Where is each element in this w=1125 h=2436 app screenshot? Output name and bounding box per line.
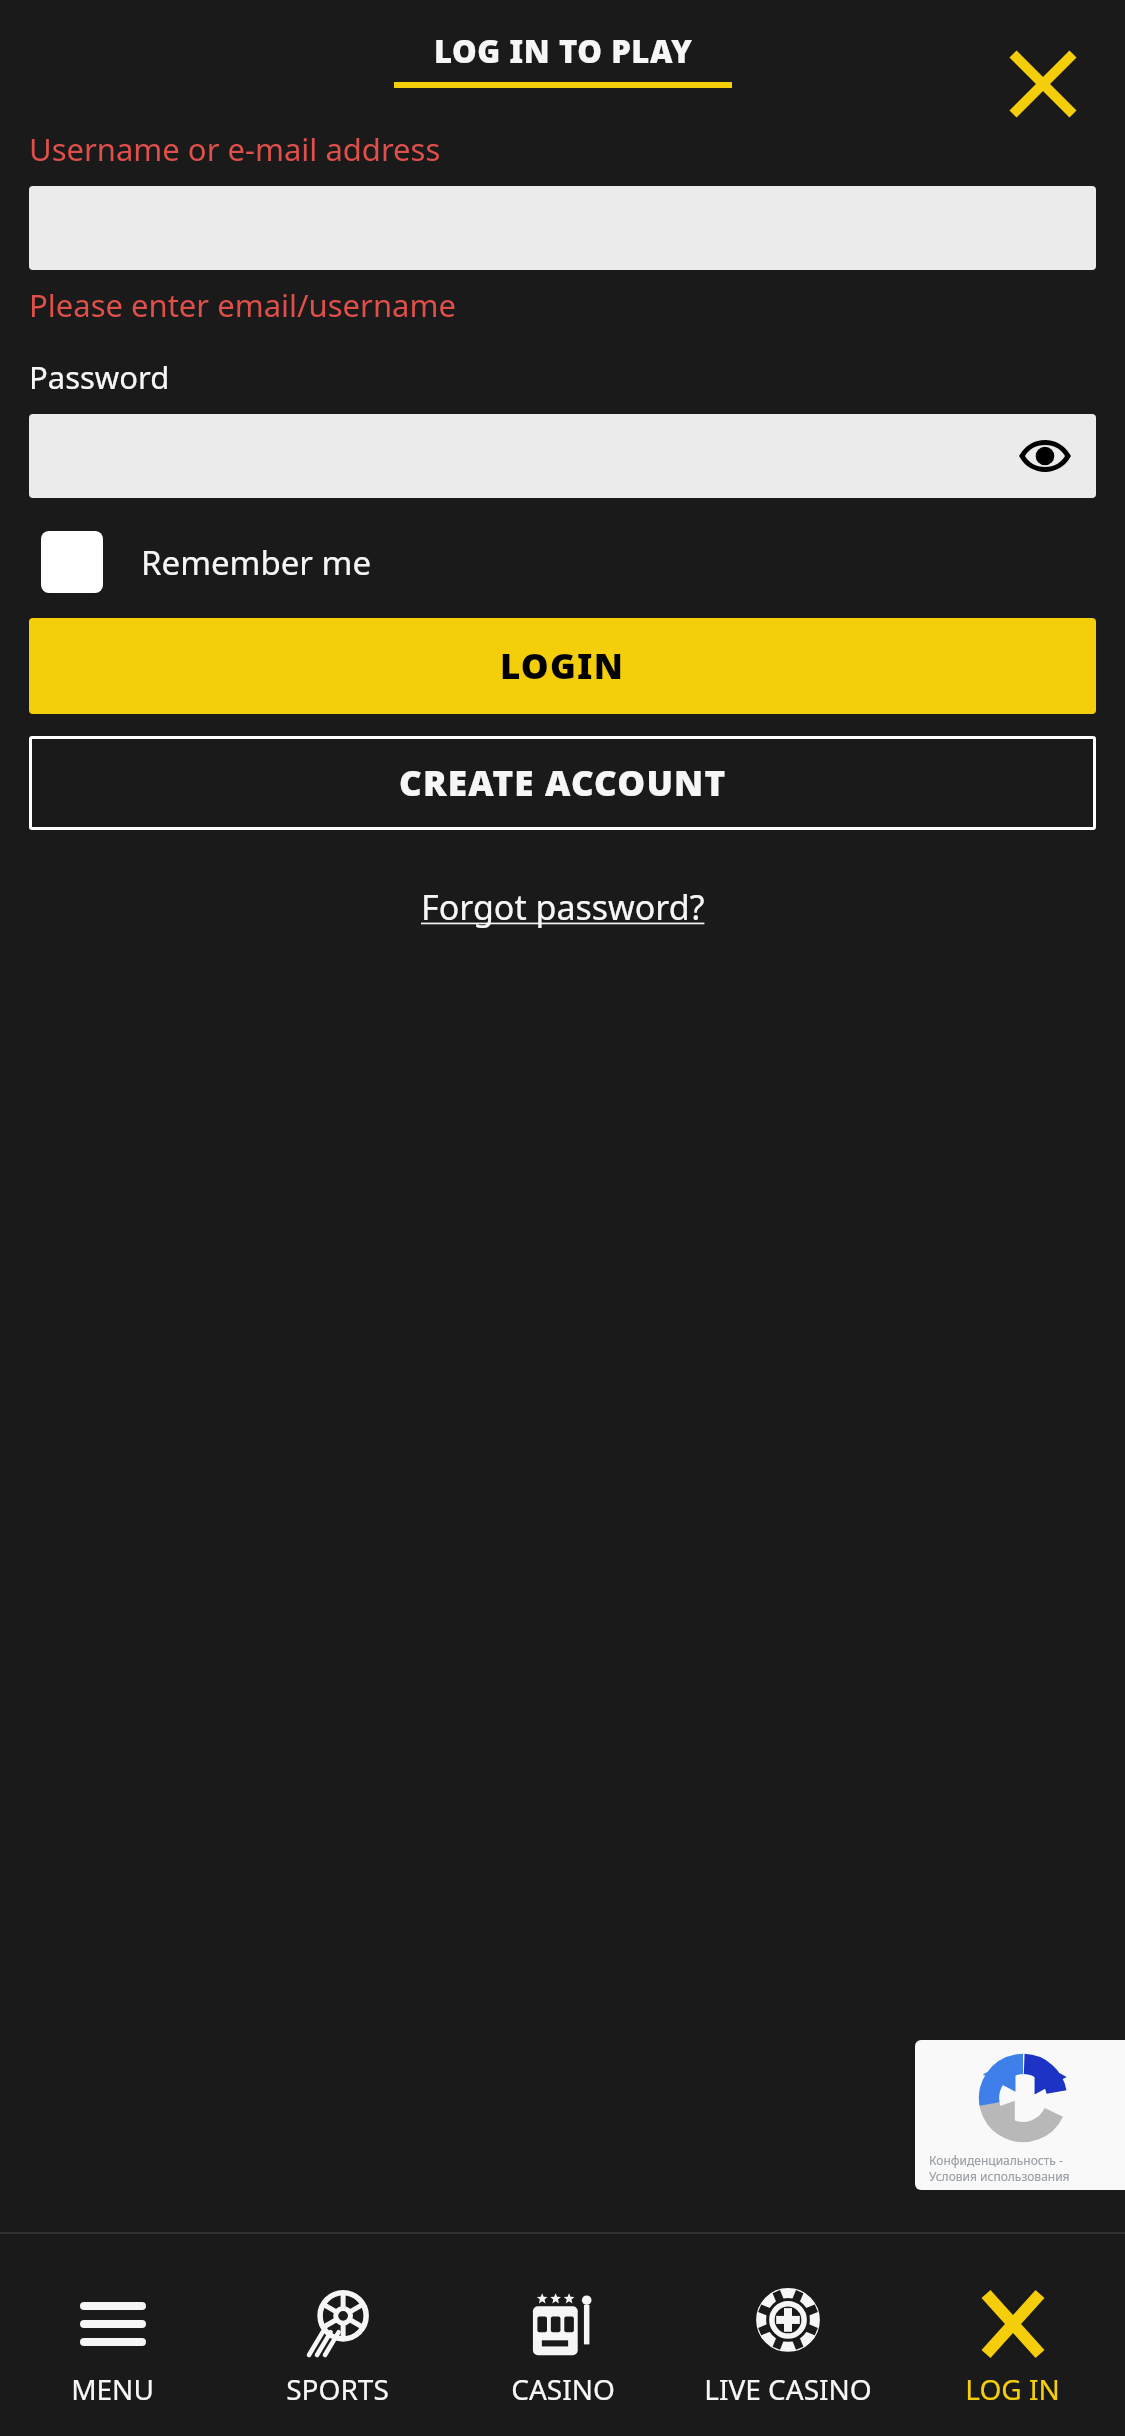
button[interactable]: Show password: [1016, 427, 1074, 485]
button[interactable]: Remember me: [29, 526, 1096, 598]
button[interactable]: SPORTS: [225, 2234, 450, 2436]
staticText: Конфиденциальность -: [929, 2152, 1063, 2168]
staticText: CASINO: [511, 2370, 615, 2408]
staticText: Username or e-mail address: [29, 128, 441, 170]
staticText: Password: [29, 356, 170, 398]
button[interactable]: CASINO: [450, 2234, 675, 2436]
staticText: SPORTS: [286, 2370, 389, 2408]
button[interactable]: Show password: [29, 414, 1096, 498]
staticText: Remember me: [141, 540, 372, 585]
staticText: Please enter email/username: [29, 284, 456, 326]
button[interactable]: reCAPTCHA: [915, 2040, 1125, 2190]
button[interactable]: LOG IN: [900, 2234, 1125, 2436]
staticText: CREATE ACCOUNT: [399, 759, 727, 807]
button[interactable]: Close: [1005, 46, 1081, 122]
staticText: LOG IN: [965, 2370, 1060, 2408]
button[interactable]: MENU: [0, 2234, 225, 2436]
button[interactable]: LIVE CASINO: [675, 2234, 900, 2436]
button[interactable]: LOGIN: [29, 618, 1096, 714]
staticText: LIVE CASINO: [704, 2370, 872, 2408]
staticText: LOGIN: [500, 642, 625, 690]
button[interactable]: Forgot password?: [411, 878, 715, 936]
staticText: LOG IN TO PLAY: [434, 30, 693, 72]
staticText: Условия использования: [929, 2168, 1070, 2184]
staticText: Forgot password?: [421, 884, 705, 930]
button[interactable]: CREATE ACCOUNT: [29, 736, 1096, 830]
staticText: MENU: [71, 2370, 154, 2408]
